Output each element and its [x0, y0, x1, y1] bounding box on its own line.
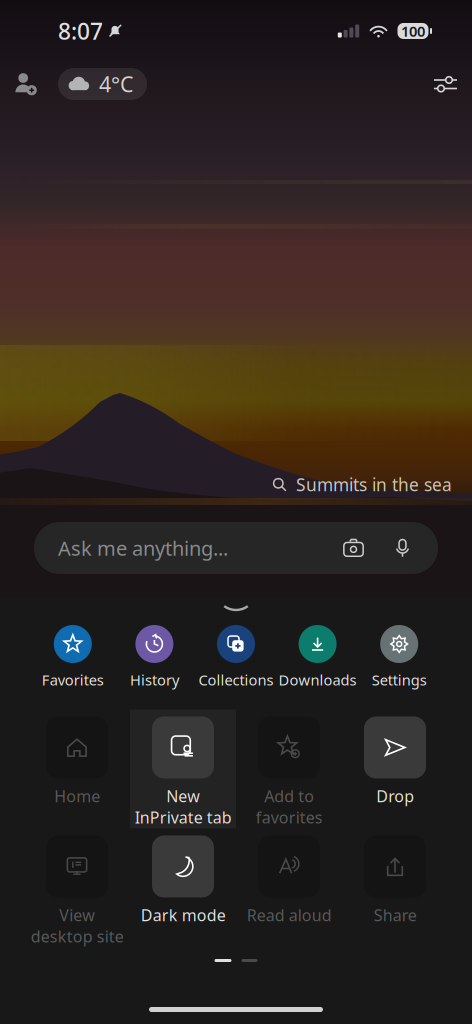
button[interactable]: Home	[24, 709, 130, 828]
staticText: 100	[401, 21, 425, 41]
staticText: Read aloud	[246, 904, 331, 926]
staticText: Drop	[376, 785, 414, 807]
staticText: 4°C	[99, 70, 133, 98]
button[interactable]: Dark mode	[130, 828, 236, 947]
button[interactable]: Customize page	[433, 71, 458, 96]
staticText: History	[130, 670, 179, 689]
staticText: Share	[373, 904, 416, 926]
button[interactable]: Drop	[342, 709, 448, 828]
staticText: Home	[54, 785, 100, 807]
button[interactable]: Collections	[195, 625, 277, 689]
button[interactable]: Settings	[358, 625, 440, 689]
staticText: Settings	[372, 670, 427, 689]
button[interactable]: 4°C	[58, 68, 147, 100]
staticText: Dark mode	[140, 904, 225, 926]
button[interactable]: Read aloud	[236, 828, 342, 947]
button[interactable]: Downloads	[277, 625, 358, 689]
button[interactable]: Favorites	[32, 625, 114, 689]
staticText: 8:07	[58, 16, 103, 46]
staticText: Favorites	[42, 670, 104, 689]
button[interactable]: View desktop site	[24, 828, 130, 947]
button[interactable]: History	[114, 625, 195, 689]
staticText: Downloads	[279, 670, 357, 689]
button[interactable]: Summits in the sea	[272, 473, 452, 496]
button[interactable]: Share	[342, 828, 448, 947]
staticText: New InPrivate tab	[134, 785, 231, 828]
staticText: Summits in the sea	[296, 473, 452, 496]
staticText: Collections	[198, 670, 273, 689]
button[interactable]: Ask me anything...	[34, 522, 438, 574]
staticText: Ask me anything...	[58, 535, 228, 561]
button[interactable]: New InPrivate tab	[130, 709, 236, 828]
button[interactable]: Sign in	[14, 72, 37, 95]
button[interactable]: Add to favorites	[236, 709, 342, 828]
staticText: Add to favorites	[255, 785, 322, 828]
staticText: View desktop site	[30, 904, 123, 947]
